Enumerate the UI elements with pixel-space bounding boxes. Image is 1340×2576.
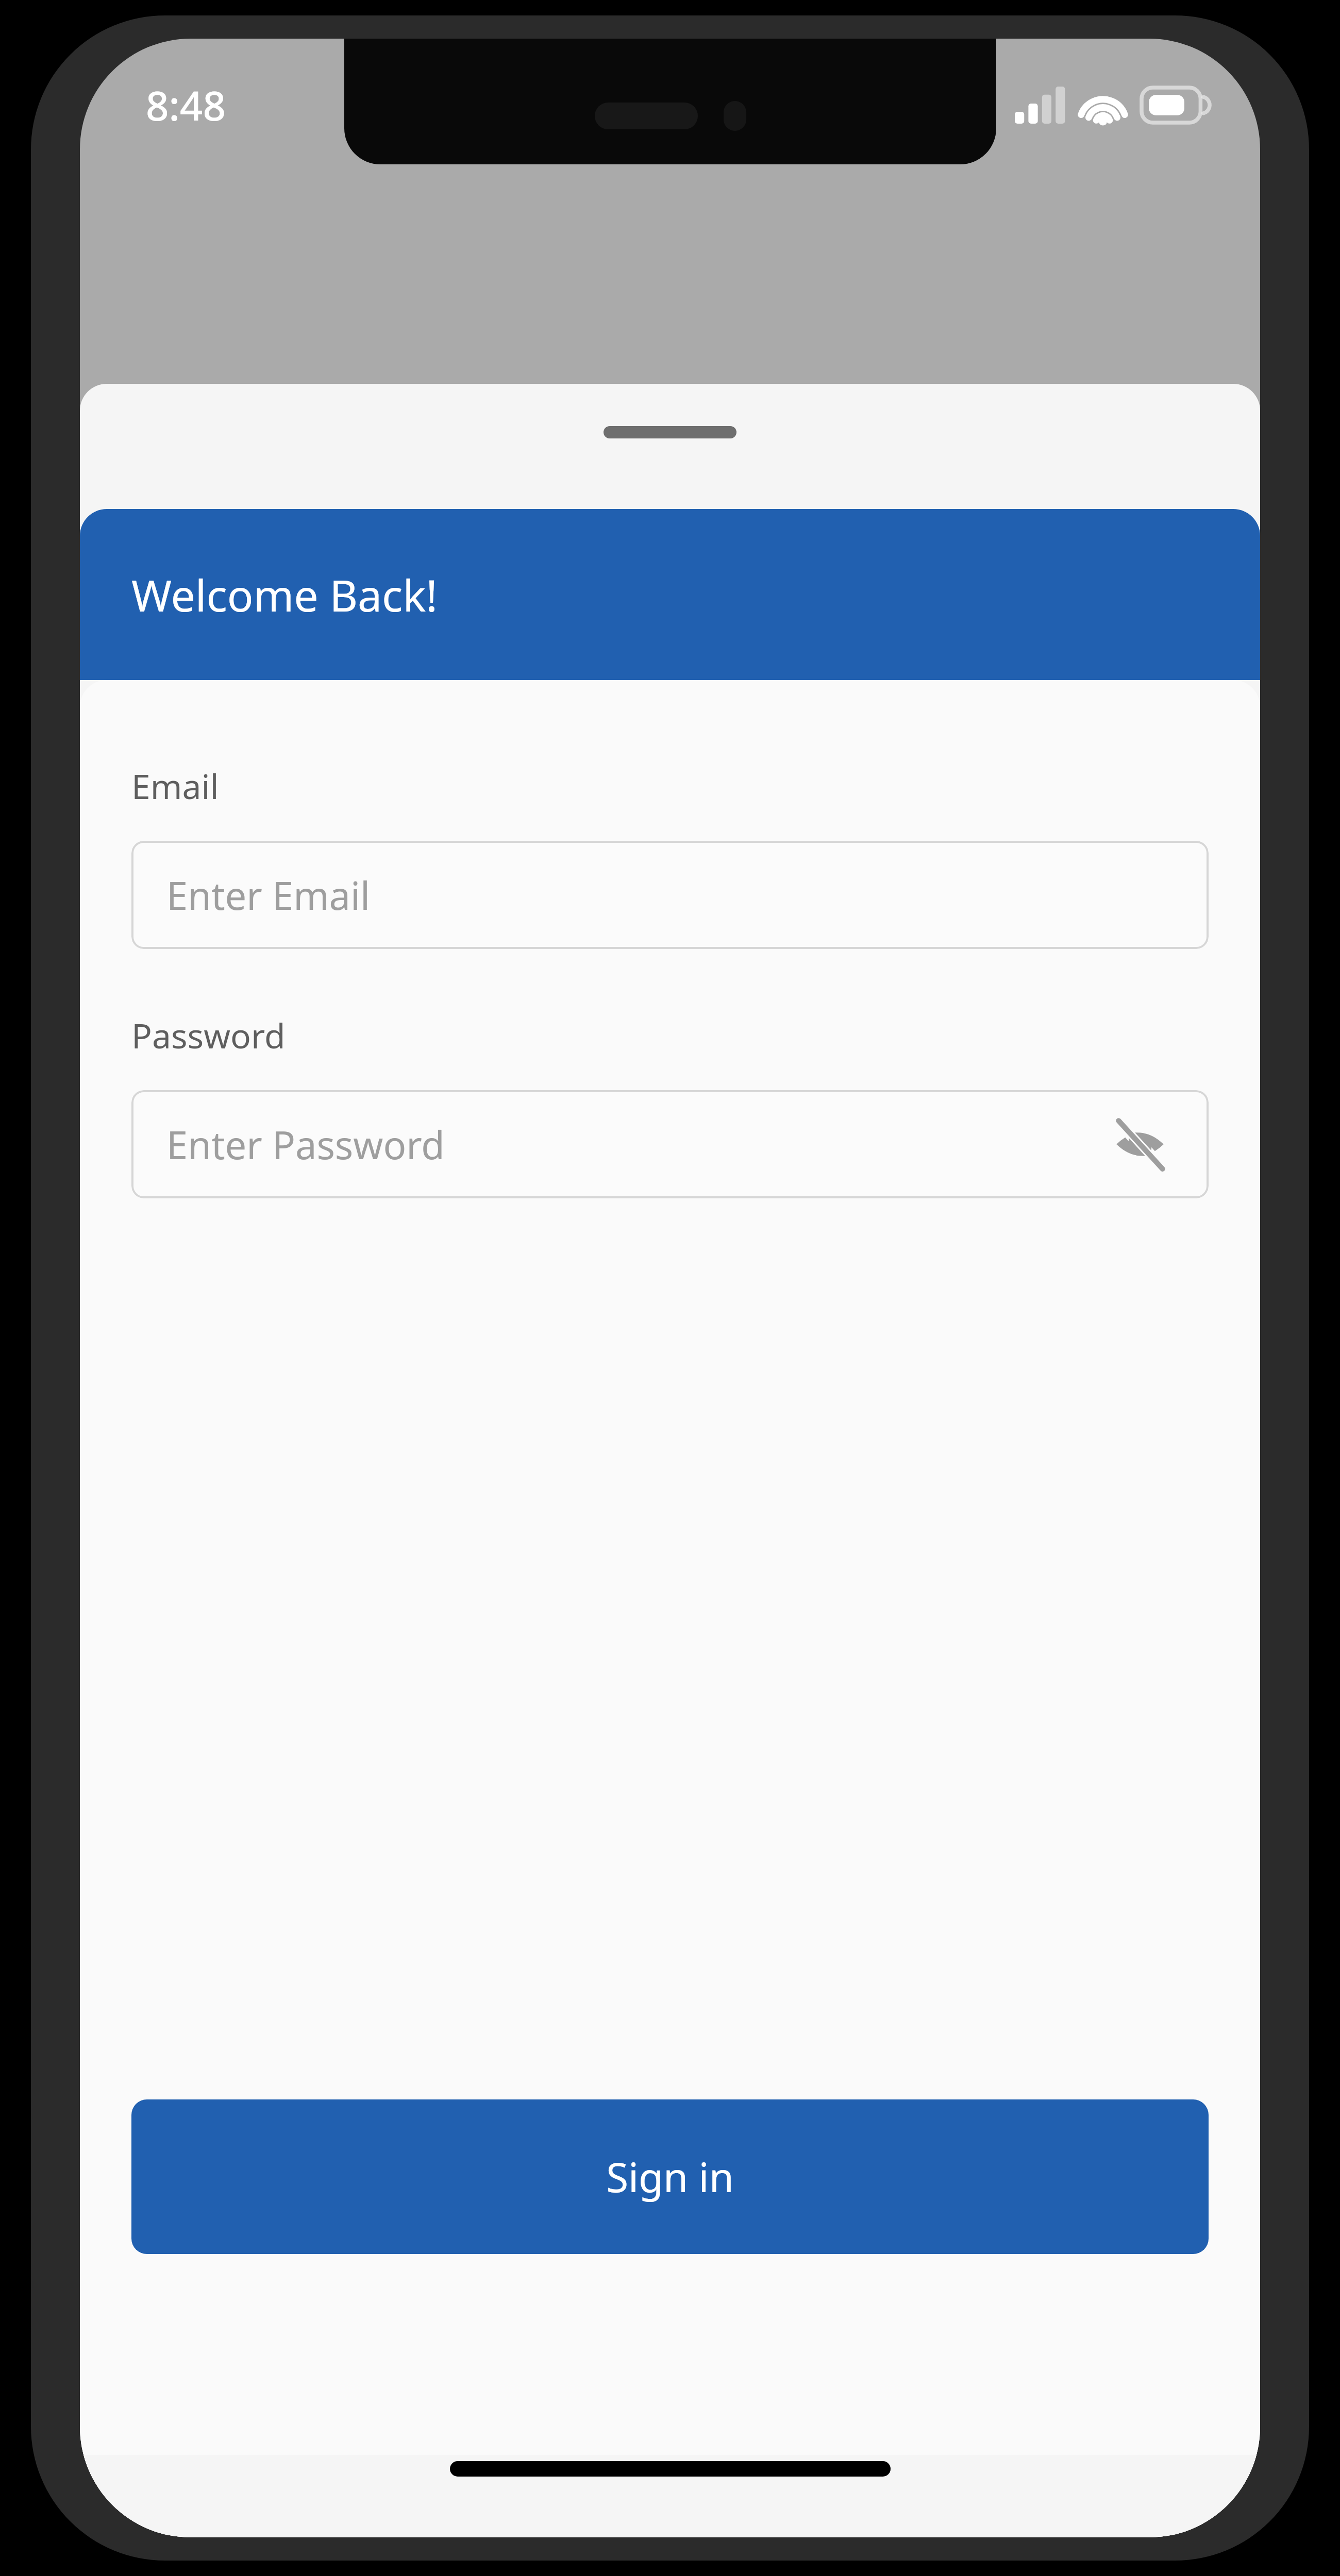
button[interactable]: Enter Email xyxy=(131,841,1209,949)
staticText: Password xyxy=(131,1012,286,1058)
staticText: 8:48 xyxy=(146,78,226,132)
button[interactable]: Show password xyxy=(1107,1111,1174,1178)
staticText: Email xyxy=(131,762,219,809)
staticText: Welcome Back! xyxy=(131,565,438,624)
button[interactable]: Sign in xyxy=(131,2099,1209,2254)
staticText: Sign in xyxy=(606,2149,734,2204)
staticText: Enter Password xyxy=(166,1118,1107,1171)
staticText: Enter Email xyxy=(166,869,1174,921)
button[interactable]: Enter Password xyxy=(131,1090,1209,1198)
